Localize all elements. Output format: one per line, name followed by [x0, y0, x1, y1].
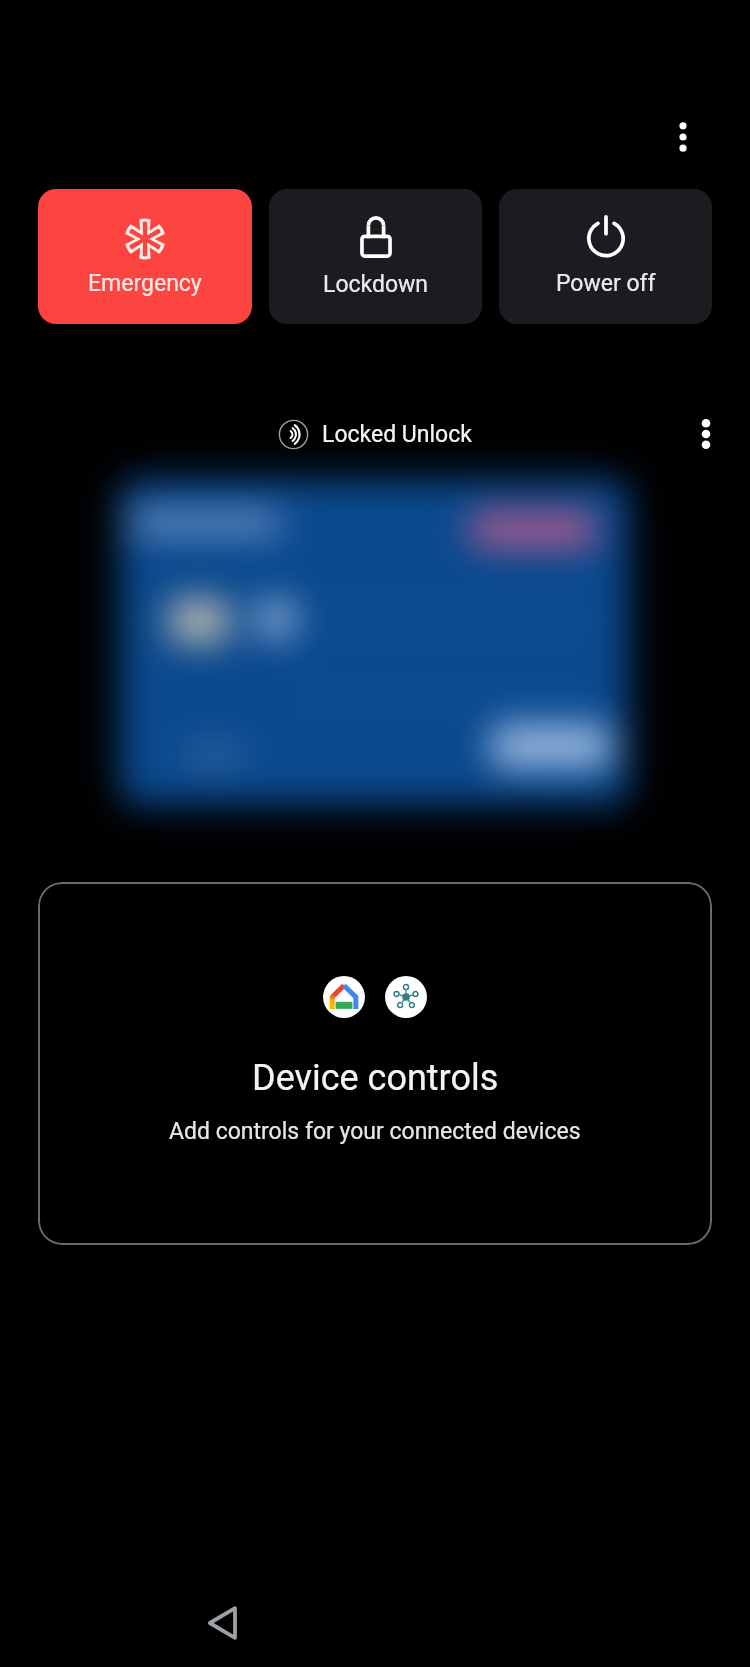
button[interactable]: Emergency	[38, 189, 252, 324]
button[interactable]: More options	[659, 113, 707, 161]
button[interactable]: Power off	[499, 189, 712, 324]
staticText: Emergency	[88, 270, 202, 297]
staticText: Add controls for your connected devices	[169, 1118, 581, 1145]
staticText: Lockdown	[323, 271, 429, 298]
button[interactable]: Back	[187, 1587, 259, 1659]
button[interactable]: Wallet options	[682, 410, 730, 458]
staticText: Device controls	[252, 1057, 499, 1099]
staticText: Power off	[556, 270, 656, 297]
button[interactable]: Locked Unlock	[278, 410, 472, 458]
staticText: Locked Unlock	[322, 421, 472, 448]
button[interactable]: Device controls	[38, 882, 712, 1245]
button[interactable]: Lockdown	[269, 189, 482, 324]
